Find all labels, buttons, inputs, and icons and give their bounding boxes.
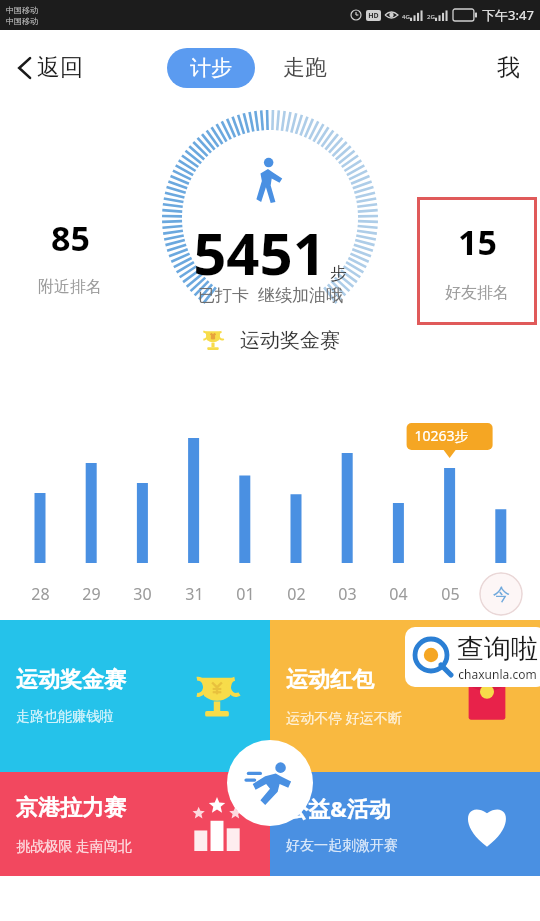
staticText: 31 <box>185 583 204 605</box>
staticText: 好友排名 <box>445 283 509 303</box>
staticText: 我 <box>497 53 520 82</box>
button[interactable]: 15 <box>420 200 534 322</box>
staticText: 02 <box>287 583 306 605</box>
staticText: 京港拉力赛 <box>16 794 126 822</box>
button[interactable]: 今 <box>479 572 523 616</box>
staticText: 04 <box>389 583 408 605</box>
staticText: 03 <box>338 583 357 605</box>
staticText: 返回 <box>37 53 83 82</box>
button[interactable]: 运动奖金赛 <box>180 320 360 360</box>
staticText: HD <box>368 11 379 21</box>
staticText: 01 <box>236 583 255 605</box>
button[interactable]: 公益&活动 <box>270 772 540 876</box>
button[interactable]: 走跑 <box>277 47 333 89</box>
staticText: 今 <box>493 584 510 605</box>
staticText: 中国移动 <box>6 5 38 15</box>
staticText: 30 <box>133 583 152 605</box>
staticText: 下午3:47 <box>482 6 534 24</box>
staticText: 好友一起刺激开赛 <box>286 837 398 855</box>
staticText: 查询啦 <box>457 632 538 666</box>
staticText: 85 <box>51 215 90 261</box>
staticText: chaxunla.com <box>458 666 537 682</box>
staticText: 5451 <box>193 213 326 292</box>
button[interactable]: 运动奖金赛 <box>0 620 270 772</box>
staticText: 29 <box>82 583 101 605</box>
staticText: 2G <box>427 13 435 21</box>
staticText: 附近排名 <box>38 277 102 297</box>
staticText: 挑战极限 走南闯北 <box>16 836 132 855</box>
staticText: 中国移动 <box>6 16 38 26</box>
staticText: 28 <box>31 583 50 605</box>
staticText: 05 <box>441 583 460 605</box>
button[interactable]: 京港拉力赛 <box>0 772 270 876</box>
button[interactable]: 计步 <box>167 48 255 88</box>
staticText: 计步 <box>190 55 232 81</box>
staticText: 运动奖金赛 <box>240 328 340 353</box>
button[interactable]: 返回 <box>10 47 89 88</box>
button[interactable]: 运动红包 <box>270 620 540 772</box>
staticText: 4G <box>402 13 410 21</box>
staticText: 15 <box>458 219 497 265</box>
button[interactable]: 我 <box>491 47 526 88</box>
staticText: 运动红包 <box>286 666 374 694</box>
staticText: 运动奖金赛 <box>16 666 126 694</box>
staticText: 运动不停 好运不断 <box>286 708 402 727</box>
button[interactable]: Start run <box>227 740 313 826</box>
staticText: 已打卡 继续加油哦 <box>198 283 343 306</box>
staticText: 走跑 <box>283 54 327 82</box>
staticText: 10263步 <box>414 426 469 445</box>
button[interactable]: 85 <box>22 215 118 297</box>
staticText: 公益&活动 <box>286 793 391 823</box>
staticText: 步 <box>330 263 347 284</box>
staticText: 走路也能赚钱啦 <box>16 708 114 726</box>
